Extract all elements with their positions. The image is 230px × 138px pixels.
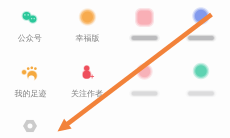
button[interactable] [173, 4, 229, 50]
staticText: 公众号 [18, 33, 42, 43]
button[interactable] [116, 5, 172, 51]
button[interactable]: 关注作者 [59, 59, 115, 105]
button[interactable] [173, 59, 229, 105]
button[interactable]: 幸福版 [59, 4, 115, 50]
staticText: 幸福版 [75, 33, 99, 43]
button[interactable]: 我的足迹 [2, 60, 58, 106]
staticText: 我的足迹 [14, 89, 46, 98]
staticText: 关注作者 [71, 89, 103, 98]
button[interactable] [116, 59, 172, 105]
button[interactable]: 公众号 [2, 5, 58, 51]
button[interactable]: Settings [17, 114, 43, 138]
